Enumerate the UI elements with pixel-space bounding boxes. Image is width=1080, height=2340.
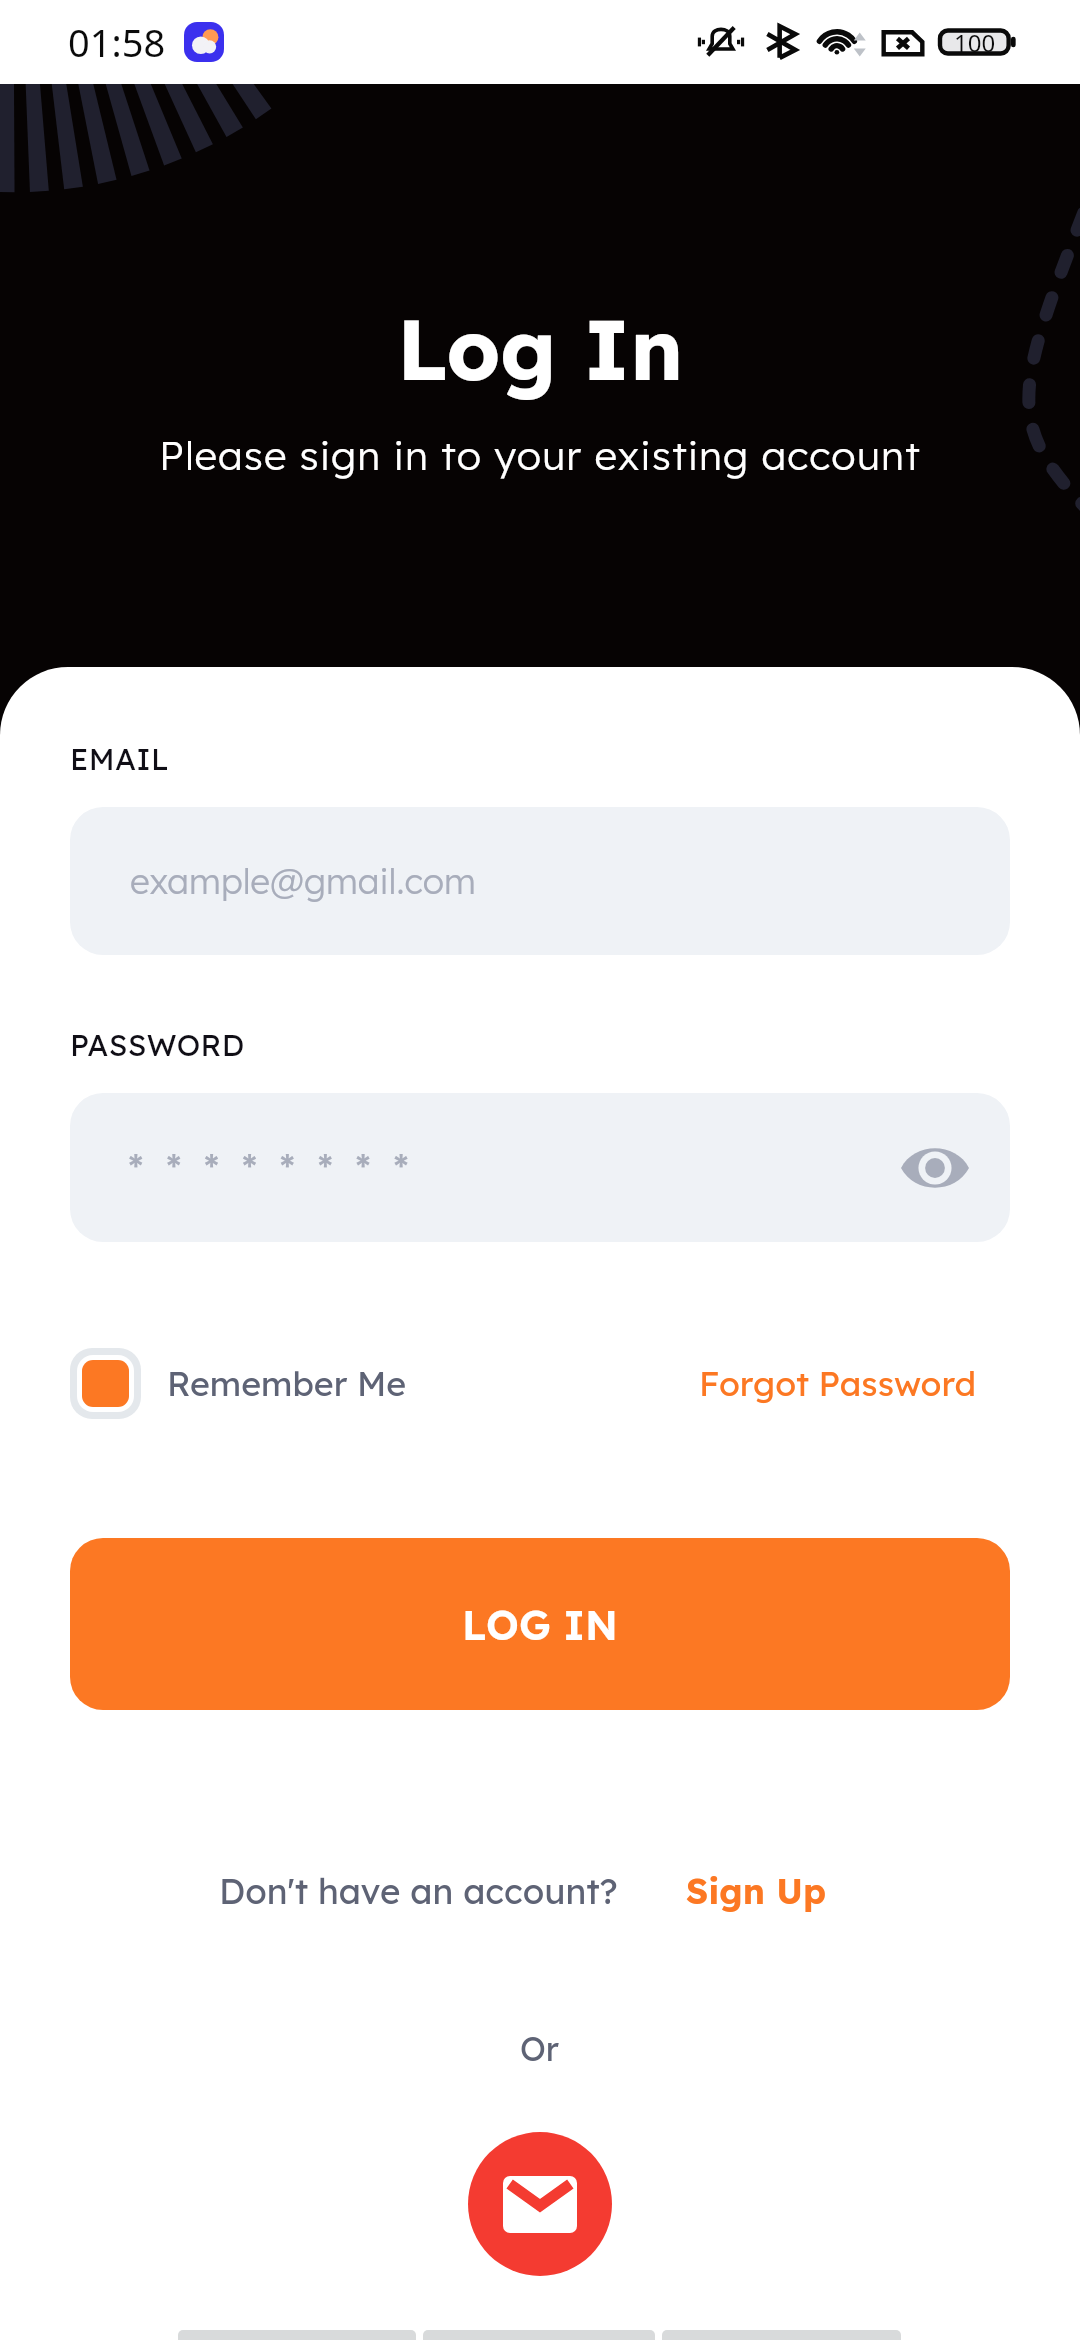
button[interactable]: Sign in with email bbox=[468, 2132, 612, 2276]
staticText: example@gmail.com bbox=[130, 859, 476, 903]
staticText: Or bbox=[520, 2028, 560, 2069]
button[interactable]: example@gmail.com bbox=[70, 807, 1010, 955]
staticText: Don't have an account? bbox=[219, 1869, 618, 1913]
button[interactable]: * * * * * * * * bbox=[70, 1093, 1010, 1242]
staticText: * * * * * * * * bbox=[128, 1143, 409, 1193]
button[interactable]: Forgot Password bbox=[699, 1362, 977, 1405]
button[interactable]: Sign Up bbox=[686, 1869, 827, 1913]
button[interactable]: LOG IN bbox=[70, 1538, 1010, 1710]
staticText: Remember Me bbox=[167, 1362, 407, 1405]
staticText: LOG IN bbox=[462, 1599, 618, 1650]
staticText: PASSWORD bbox=[70, 1026, 245, 1064]
staticText: Please sign in to your existing account bbox=[159, 430, 921, 480]
staticText: 01:58 bbox=[68, 16, 166, 68]
staticText: EMAIL bbox=[70, 740, 170, 778]
staticText: Log In bbox=[397, 296, 684, 401]
staticText: 100 bbox=[954, 26, 996, 59]
staticText: Sign Up bbox=[686, 1869, 827, 1913]
button[interactable]: Show password bbox=[898, 1131, 972, 1205]
button[interactable]: Remember Me bbox=[70, 1348, 407, 1419]
staticText: Forgot Password bbox=[699, 1362, 977, 1405]
